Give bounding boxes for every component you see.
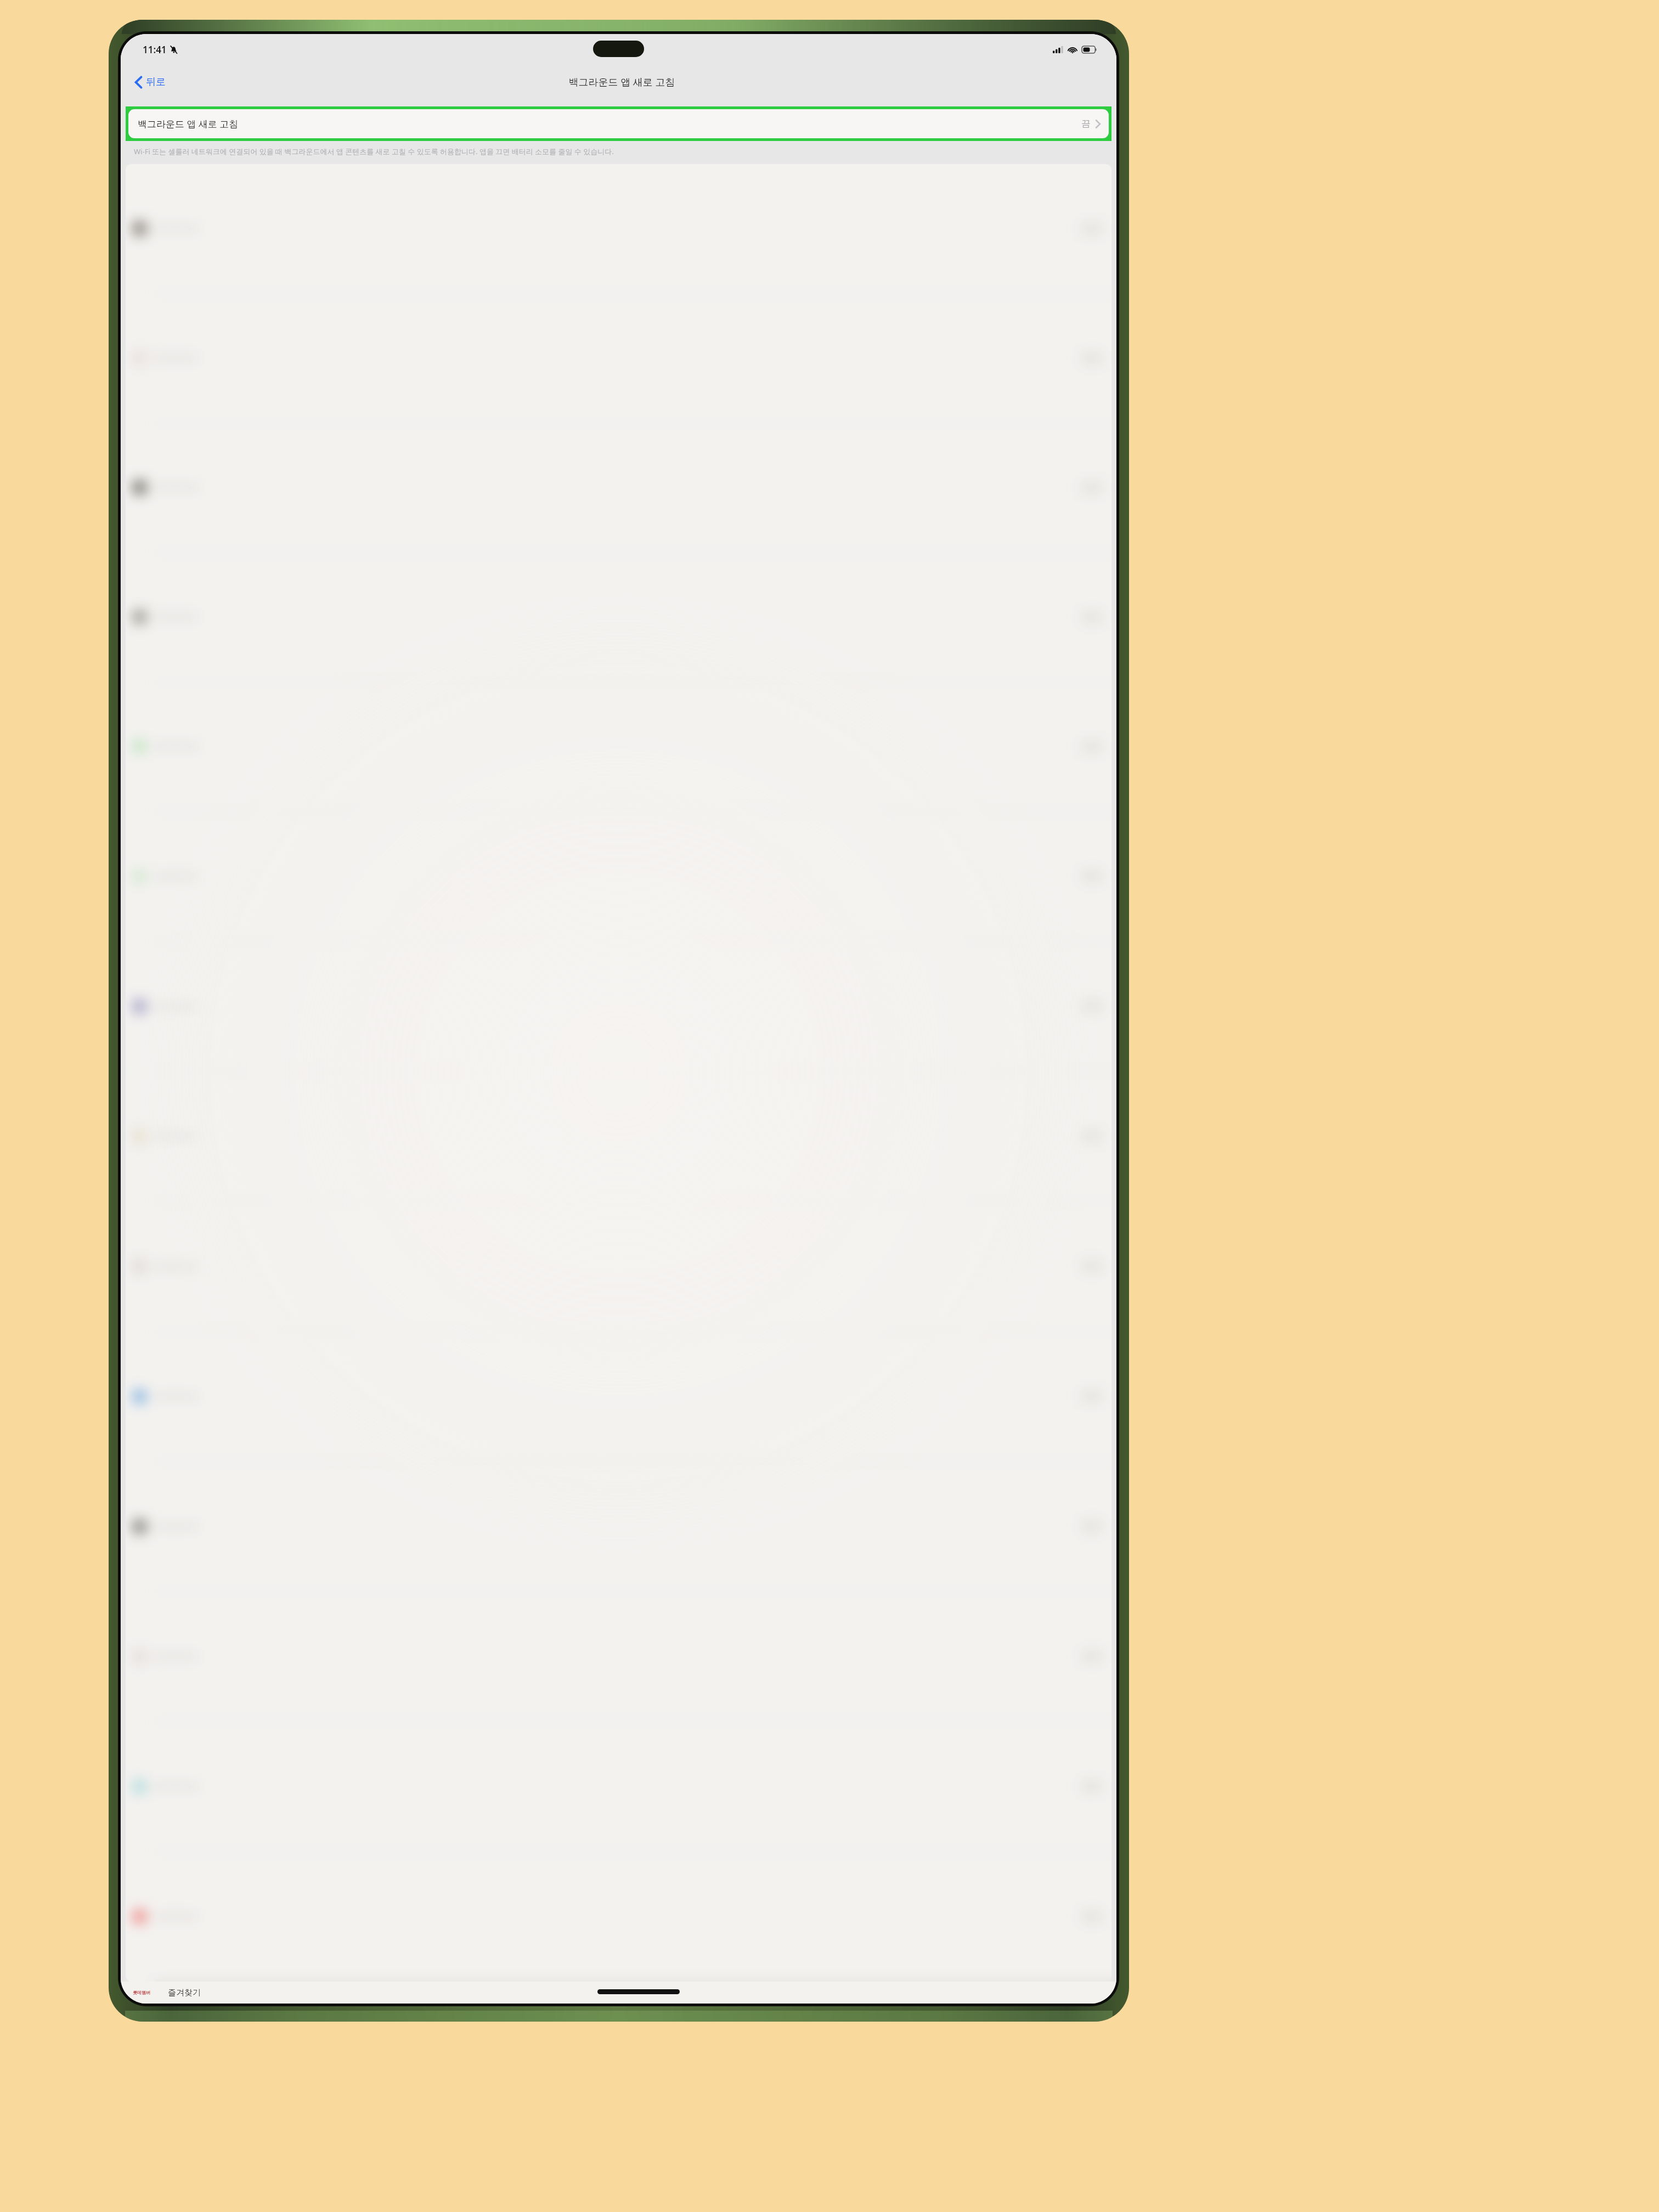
button[interactable]: 백그라운드 앱 새로 고침 <box>128 109 1109 138</box>
staticText: 끔 <box>1081 118 1091 129</box>
staticText: 롯데멤버 <box>133 1990 150 1995</box>
staticText: 11:41 <box>143 43 167 56</box>
button[interactable]: 뒤로 <box>132 71 169 93</box>
staticText: Wi-Fi 또는 셀룰러 네트워크에 연결되어 있을 때 백그라운드에서 앱 콘… <box>134 146 1104 156</box>
staticText: 즐겨찾기 <box>168 1988 201 1998</box>
staticText: 백그라운드 앱 새로 고침 <box>138 117 239 130</box>
staticText: 백그라운드 앱 새로 고침 <box>568 75 675 89</box>
staticText: 뒤로 <box>146 76 166 88</box>
